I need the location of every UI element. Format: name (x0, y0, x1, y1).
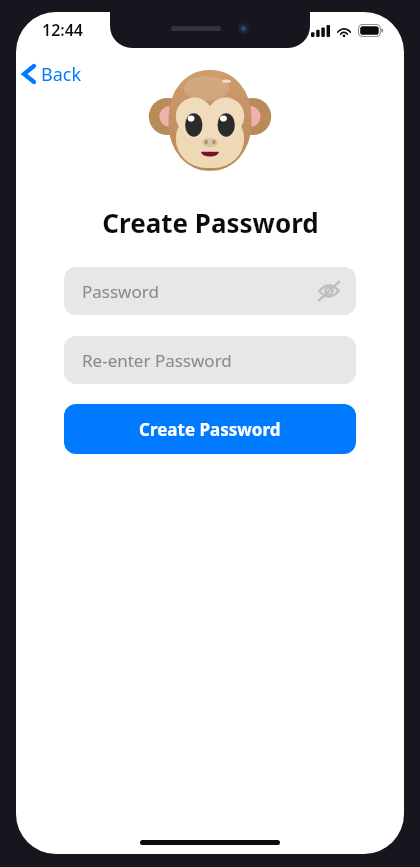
button[interactable]: Back (16, 58, 92, 90)
button[interactable]: Password (64, 267, 356, 315)
button[interactable]: Create Password (64, 404, 356, 454)
staticText: Create Password (139, 418, 281, 441)
staticText: Re-enter Password (82, 349, 232, 372)
staticText: Password (82, 280, 159, 303)
button[interactable]: Re-enter Password (64, 336, 356, 384)
staticText: 12:44 (42, 19, 84, 41)
staticText: Back (41, 62, 82, 87)
staticText: Create Password (102, 205, 319, 240)
button[interactable]: Show password (312, 274, 346, 308)
